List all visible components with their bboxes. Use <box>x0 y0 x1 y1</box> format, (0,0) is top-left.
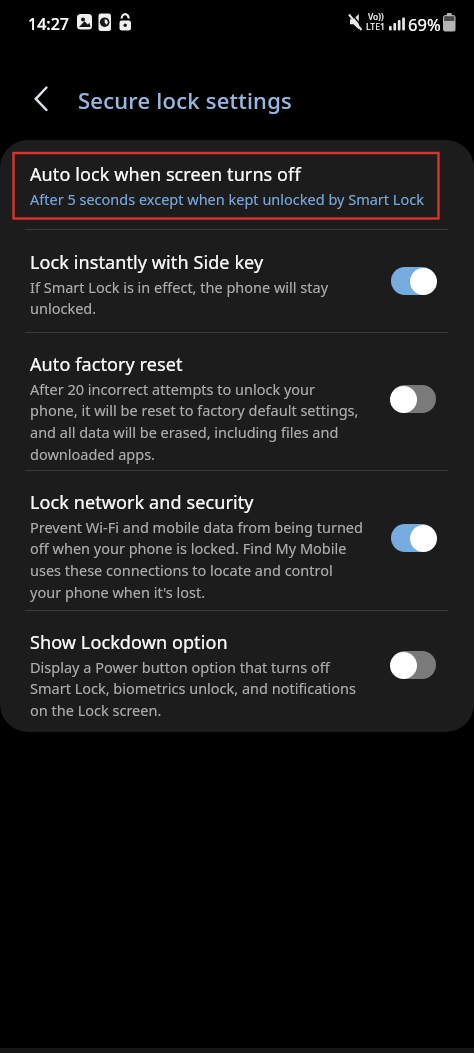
button[interactable] <box>391 385 436 413</box>
button[interactable]: Lock network and security <box>0 470 474 610</box>
button[interactable]: Auto factory reset <box>0 332 474 470</box>
button[interactable] <box>391 524 436 552</box>
button[interactable] <box>26 85 62 115</box>
staticText: Secure lock settings <box>78 85 292 115</box>
button[interactable] <box>391 651 436 679</box>
button[interactable]: Auto lock when screen turns off <box>0 140 474 229</box>
staticText: Lock instantly with Side key <box>30 250 264 275</box>
staticText: Show Lockdown option <box>30 630 228 655</box>
staticText: Vo)) <box>368 11 384 23</box>
button[interactable]: Lock instantly with Side key <box>0 229 474 332</box>
staticText: 14:27 <box>28 13 69 35</box>
staticText: LTE1 <box>366 21 385 33</box>
staticText: Prevent Wi-Fi and mobile data from being… <box>30 517 363 603</box>
button[interactable]: Show Lockdown option <box>0 610 474 732</box>
staticText: Display a Power button option that turns… <box>30 657 356 721</box>
staticText: If Smart Lock is in effect, the phone wi… <box>30 277 329 319</box>
button[interactable] <box>391 267 436 295</box>
staticText: 69% <box>408 13 441 35</box>
staticText: Auto factory reset <box>30 352 183 377</box>
staticText: After 5 seconds except when kept unlocke… <box>30 189 424 209</box>
staticText: Lock network and security <box>30 490 254 515</box>
staticText: After 20 incorrect attempts to unlock yo… <box>30 379 359 465</box>
staticText: Auto lock when screen turns off <box>30 162 301 187</box>
